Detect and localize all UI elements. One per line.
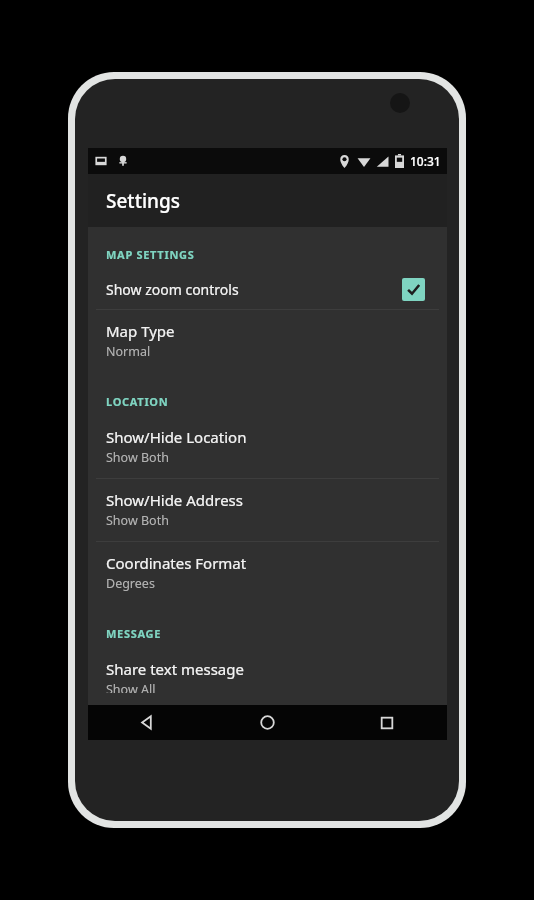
staticText: 10:31 [410, 153, 441, 169]
staticText: Show Both [106, 449, 169, 466]
other: Show zoom controls checkbox [402, 278, 425, 301]
staticText: Settings [106, 188, 180, 214]
staticText: Show All [106, 681, 156, 693]
staticText: Coordinates Format [106, 553, 247, 573]
staticText: Map Type [106, 321, 175, 341]
staticText: MESSAGE [106, 626, 162, 641]
button[interactable]: Home [207, 705, 327, 740]
staticText: LOCATION [106, 394, 169, 409]
button[interactable]: Show/Hide Address [88, 479, 447, 541]
staticText: Normal [106, 343, 151, 360]
button[interactable]: Show zoom controls [88, 269, 447, 309]
staticText: Show/Hide Address [106, 490, 243, 510]
staticText: Show Both [106, 512, 169, 529]
button[interactable]: Coordinates Format [88, 542, 447, 604]
button[interactable]: Show/Hide Location [88, 416, 447, 478]
button[interactable]: Recent apps [327, 705, 447, 740]
staticText: Degrees [106, 575, 155, 592]
button[interactable]: Back [88, 705, 207, 740]
staticText: MAP SETTINGS [106, 247, 195, 262]
staticText: Share text message [106, 659, 244, 679]
button[interactable]: Settings [88, 174, 447, 227]
button[interactable]: Map Type [88, 310, 447, 372]
staticText: Show zoom controls [106, 280, 402, 299]
staticText: Show/Hide Location [106, 427, 247, 447]
button[interactable]: Share text message [88, 648, 447, 705]
